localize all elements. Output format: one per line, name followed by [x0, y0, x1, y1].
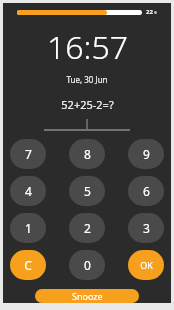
button[interactable]: 9: [128, 139, 164, 169]
button[interactable]: 8: [69, 139, 105, 169]
staticText: 3: [143, 220, 150, 236]
button[interactable]: Clear: [10, 250, 46, 280]
staticText: C: [24, 257, 32, 273]
button[interactable]: 5: [69, 176, 105, 206]
button[interactable]: 0: [69, 250, 105, 280]
button[interactable]: OK: [128, 250, 164, 280]
button[interactable]: 6: [128, 176, 164, 206]
staticText: 0: [84, 257, 91, 273]
staticText: Snooze: [72, 290, 103, 302]
staticText: 5: [84, 183, 91, 199]
staticText: 6: [143, 183, 150, 199]
button[interactable]: 2: [69, 213, 105, 243]
staticText: 22: [146, 8, 153, 16]
button[interactable]: 1: [10, 213, 46, 243]
button[interactable]: 4: [10, 176, 46, 206]
staticText: 1: [25, 220, 32, 236]
staticText: 4: [25, 183, 32, 199]
staticText: OK: [140, 259, 153, 271]
staticText: 2: [84, 220, 91, 236]
staticText: Tue, 30 Jun: [66, 74, 108, 85]
staticText: 8: [84, 146, 91, 162]
button[interactable]: 3: [128, 213, 164, 243]
staticText: 9: [143, 146, 150, 162]
button[interactable]: Snooze: [35, 289, 139, 303]
button[interactable]: 7: [10, 139, 46, 169]
staticText: 52+25-2=?: [61, 97, 114, 112]
staticText: 16:57: [47, 25, 128, 69]
staticText: 7: [25, 146, 32, 162]
